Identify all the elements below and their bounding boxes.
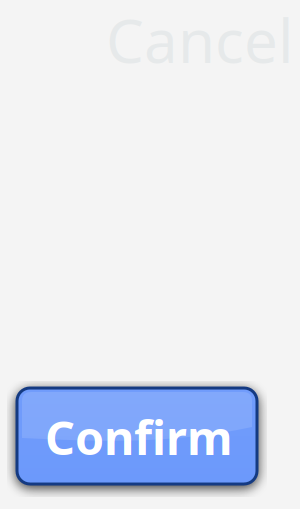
staticText: Confirm	[45, 406, 233, 468]
staticText: Cancel	[106, 0, 293, 80]
button[interactable]: Confirm	[17, 388, 257, 484]
button[interactable]: Cancel	[106, 0, 293, 80]
